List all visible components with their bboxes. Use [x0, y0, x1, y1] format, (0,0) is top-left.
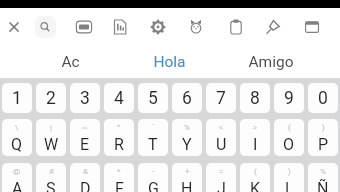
- staticText: 8: [250, 88, 260, 109]
- staticText: |: [50, 123, 52, 132]
- button[interactable]: Q: [2, 119, 32, 156]
- button[interactable]: 1: [2, 83, 32, 113]
- staticText: G: [148, 179, 159, 192]
- button[interactable]: E: [70, 119, 100, 156]
- button[interactable]: Stickers: [105, 12, 135, 42]
- button[interactable]: Amigo: [220, 45, 321, 79]
- staticText: W: [44, 135, 59, 154]
- staticText: \: [15, 123, 19, 132]
- staticText: %: [320, 167, 326, 176]
- button[interactable]: T: [138, 119, 168, 156]
- staticText: <: [219, 123, 224, 132]
- button[interactable]: 9: [274, 83, 304, 113]
- button[interactable]: O: [274, 119, 304, 156]
- staticText: T: [148, 135, 158, 154]
- button[interactable]: S: [36, 163, 66, 192]
- button[interactable]: Ñ: [308, 163, 338, 192]
- staticText: ): [288, 167, 291, 176]
- button[interactable]: Emoji: [181, 12, 211, 42]
- staticText: Q: [11, 135, 23, 154]
- staticText: Hola: [153, 53, 186, 71]
- staticText: I: [253, 135, 258, 154]
- staticText: %: [184, 123, 190, 132]
- staticText: O: [283, 135, 295, 154]
- button[interactable]: J: [206, 163, 236, 192]
- staticText: H: [181, 179, 193, 192]
- staticText: *: [117, 167, 121, 176]
- staticText: F: [115, 179, 124, 192]
- button[interactable]: L: [274, 163, 304, 192]
- staticText: `: [152, 123, 155, 132]
- staticText: 0: [318, 88, 328, 109]
- staticText: =: [219, 167, 224, 176]
- button[interactable]: F: [104, 163, 134, 192]
- button[interactable]: 6: [172, 83, 202, 113]
- button[interactable]: G: [138, 163, 168, 192]
- button[interactable]: D: [70, 163, 100, 192]
- staticText: Ñ: [317, 179, 329, 192]
- staticText: +: [185, 167, 190, 176]
- staticText: 3: [80, 88, 90, 109]
- button[interactable]: Calendar: [297, 12, 327, 42]
- staticText: 7: [216, 88, 226, 109]
- button[interactable]: Pin: [258, 12, 288, 42]
- button[interactable]: P: [308, 119, 338, 156]
- button[interactable]: 8: [240, 83, 270, 113]
- button[interactable]: Close: [0, 12, 29, 42]
- button[interactable]: I: [240, 119, 270, 156]
- button[interactable]: W: [36, 119, 66, 156]
- staticText: D: [80, 179, 91, 192]
- staticText: U: [216, 135, 227, 154]
- staticText: >: [253, 123, 258, 132]
- button[interactable]: GIF: [69, 12, 99, 42]
- button[interactable]: 4: [104, 83, 134, 113]
- button[interactable]: K: [240, 163, 270, 192]
- staticText: S: [46, 179, 56, 192]
- staticText: 4: [114, 88, 124, 109]
- button[interactable]: 3: [70, 83, 100, 113]
- button[interactable]: R: [104, 119, 134, 156]
- staticText: Y: [182, 135, 192, 154]
- button[interactable]: Y: [172, 119, 202, 156]
- staticText: &: [83, 167, 88, 176]
- staticText: E: [80, 135, 90, 154]
- staticText: ): [322, 123, 325, 132]
- staticText: R: [114, 135, 124, 154]
- staticText: @: [13, 167, 21, 176]
- button[interactable]: A: [2, 163, 32, 192]
- staticText: 1: [12, 88, 22, 109]
- staticText: A: [12, 179, 23, 192]
- button[interactable]: U: [206, 119, 236, 156]
- staticText: (: [254, 167, 257, 176]
- staticText: (: [288, 123, 291, 132]
- button[interactable]: Clipboard: [221, 12, 251, 42]
- staticText: #: [49, 167, 54, 176]
- staticText: -: [152, 167, 155, 176]
- staticText: ^: [117, 123, 121, 132]
- button[interactable]: 0: [308, 83, 338, 113]
- button[interactable]: 7: [206, 83, 236, 113]
- staticText: 2: [46, 88, 56, 109]
- button[interactable]: Settings: [143, 12, 173, 42]
- staticText: Ac: [61, 53, 80, 71]
- staticText: 9: [284, 88, 294, 109]
- staticText: P: [318, 135, 329, 154]
- button[interactable]: 2: [36, 83, 66, 113]
- staticText: 6: [182, 88, 192, 109]
- staticText: J: [217, 179, 226, 192]
- button[interactable]: Ac: [20, 45, 121, 79]
- button[interactable]: Search: [30, 12, 60, 42]
- staticText: K: [250, 179, 261, 192]
- button[interactable]: 5: [138, 83, 168, 113]
- button[interactable]: Hola: [119, 45, 220, 79]
- staticText: 5: [148, 88, 158, 109]
- button[interactable]: H: [172, 163, 202, 192]
- staticText: Amigo: [248, 53, 294, 71]
- staticText: L: [285, 179, 294, 192]
- staticText: ~: [82, 123, 88, 132]
